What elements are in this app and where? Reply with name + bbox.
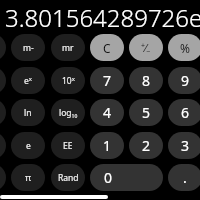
staticText: ln	[24, 107, 32, 119]
staticText: 5	[142, 103, 151, 122]
staticText: 2	[142, 136, 151, 155]
button[interactable]: 10x	[51, 67, 85, 94]
staticText: 8	[142, 71, 151, 90]
button[interactable]: 0	[90, 164, 163, 191]
button[interactable]: %	[168, 34, 200, 61]
button[interactable]: Rad	[0, 164, 6, 191]
button[interactable]: x2	[0, 67, 6, 94]
staticText: e	[26, 140, 31, 152]
button[interactable]: C	[90, 34, 124, 61]
button[interactable]: mr	[51, 34, 85, 61]
button[interactable]: mc	[0, 34, 6, 61]
staticText: 6	[181, 103, 190, 122]
staticText: mr	[62, 42, 74, 54]
staticText: 7	[103, 71, 112, 90]
button[interactable]: +⁄−	[129, 34, 163, 61]
staticText: C	[103, 40, 111, 56]
staticText: log10	[59, 107, 78, 119]
staticText: EE	[63, 140, 73, 152]
staticText: 3.801564289726e	[5, 1, 200, 34]
staticText: 10x	[62, 75, 75, 87]
staticText: 3	[181, 136, 190, 155]
button[interactable]: ex	[11, 67, 45, 94]
staticText: ex	[24, 75, 32, 87]
button[interactable]: 3	[168, 132, 200, 159]
staticText: 9	[181, 71, 190, 90]
button[interactable]: EE	[51, 132, 85, 159]
button[interactable]: 6	[168, 99, 200, 126]
button[interactable]: π	[11, 164, 45, 191]
button[interactable]: .	[168, 164, 200, 191]
staticText: 0	[104, 168, 113, 187]
staticText: .	[183, 168, 187, 187]
button[interactable]: 4	[90, 99, 124, 126]
button[interactable]: x!	[0, 132, 6, 159]
staticText: 4	[103, 103, 112, 122]
button[interactable]: e	[11, 132, 45, 159]
staticText: π	[25, 171, 32, 184]
staticText: %	[180, 40, 190, 56]
button[interactable]: 8	[129, 67, 163, 94]
button[interactable]: ln	[11, 99, 45, 126]
staticText: +⁄−	[141, 40, 151, 56]
staticText: Rand	[58, 172, 79, 184]
button[interactable]: 1	[90, 132, 124, 159]
button[interactable]: 7	[90, 67, 124, 94]
button[interactable]: 5	[129, 99, 163, 126]
staticText: 1	[103, 136, 112, 155]
button[interactable]: Rand	[51, 164, 85, 191]
button[interactable]: 1/x	[0, 99, 6, 126]
staticText: m-	[23, 42, 34, 54]
button[interactable]: m-	[11, 34, 45, 61]
button[interactable]: log10	[51, 99, 85, 126]
button[interactable]: 9	[168, 67, 200, 94]
button[interactable]: 2	[129, 132, 163, 159]
